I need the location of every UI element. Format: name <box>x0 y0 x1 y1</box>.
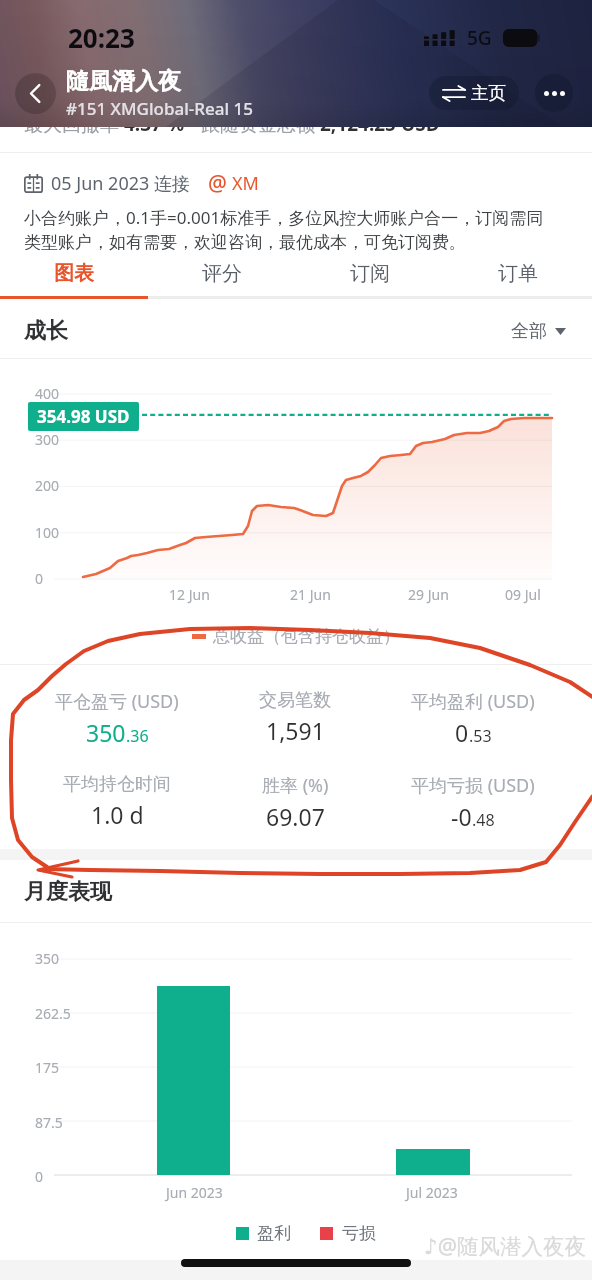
button[interactable]: Back <box>15 73 56 114</box>
button[interactable]: 订阅 <box>296 250 444 296</box>
staticText: 跟随资金总额 <box>201 111 320 137</box>
staticText: 订单 <box>498 261 538 286</box>
staticText: 4.37 % <box>124 111 185 137</box>
staticText: 月度表现 <box>24 878 112 906</box>
staticText: 29 Jun <box>408 585 449 604</box>
staticText: 0 <box>35 569 44 588</box>
staticText: 12 Jun <box>169 585 210 604</box>
staticText: 平均亏损 (USD) <box>411 773 535 798</box>
staticText: 69.07 <box>266 801 325 832</box>
staticText: 订阅 <box>350 261 390 286</box>
staticText: 21 Jun <box>290 585 331 604</box>
button[interactable]: 图表 <box>0 250 148 296</box>
staticText: .36 <box>126 725 149 747</box>
staticText: XM <box>232 171 259 196</box>
staticText: 262.5 <box>35 1004 71 1023</box>
staticText: 隨風潛入夜 <box>66 67 181 96</box>
staticText: 亏损 <box>342 1223 376 1244</box>
staticText: .53 <box>469 725 492 747</box>
staticText: 评分 <box>202 261 242 286</box>
staticText: 0 <box>35 1167 44 1186</box>
staticText: 350 <box>86 717 126 748</box>
staticText: 平仓盈亏 (USD) <box>55 689 179 714</box>
staticText: 小合约账户，0.1手=0.001标准手，多位风控大师账户合一，订阅需同 <box>24 206 544 229</box>
button[interactable]: More options <box>535 74 573 112</box>
staticText: 09 Jul <box>505 585 541 604</box>
staticText: Jun 2023 <box>166 1183 223 1202</box>
staticText: 300 <box>35 430 60 449</box>
staticText: 最大回撤率 <box>24 111 124 137</box>
button[interactable]: 主页 <box>429 76 519 110</box>
button[interactable]: 订单 <box>444 250 592 296</box>
staticText: 总收益（包含持仓收益） <box>213 626 400 647</box>
staticText: 成长 <box>24 317 68 345</box>
staticText: 2,124.25 USD <box>320 111 440 137</box>
staticText: 354.98 USD <box>37 405 130 428</box>
staticText: 1,591 <box>266 715 325 746</box>
staticText: ♪@随风潜入夜夜 <box>424 1231 587 1260</box>
button[interactable]: 评分 <box>148 250 296 296</box>
staticText: 图表 <box>54 261 94 286</box>
staticText: @ <box>208 169 227 198</box>
staticText: .48 <box>472 809 495 831</box>
staticText: 5G <box>467 25 492 51</box>
button[interactable]: 全部 <box>507 316 570 347</box>
staticText: 100 <box>35 523 60 542</box>
staticText: 盈利 <box>257 1223 291 1244</box>
staticText: 平均盈利 (USD) <box>411 689 535 714</box>
staticText: 175 <box>35 1058 60 1077</box>
staticText: 20:23 <box>68 20 135 55</box>
staticText: 交易笔数 <box>259 689 331 712</box>
staticText: 主页 <box>471 82 506 104</box>
staticText: Jul 2023 <box>406 1183 458 1202</box>
staticText: 类型账户，如有需要，欢迎咨询，最优成本，可免订阅费。 <box>24 232 466 253</box>
staticText: -0 <box>451 801 472 832</box>
staticText: 05 Jun 2023 连接 <box>51 171 190 196</box>
staticText: 全部 <box>511 320 547 343</box>
staticText: 350 <box>35 949 60 968</box>
staticText: 胜率 (%) <box>262 773 329 798</box>
staticText: 200 <box>35 476 60 495</box>
staticText: #151 XMGlobal-Real 15 <box>66 97 253 120</box>
staticText: 平均持仓时间 <box>63 773 171 796</box>
staticText: 400 <box>35 384 60 403</box>
staticText: 87.5 <box>35 1113 63 1132</box>
staticText: 1.0 d <box>91 799 144 830</box>
staticText: 0 <box>455 717 469 748</box>
